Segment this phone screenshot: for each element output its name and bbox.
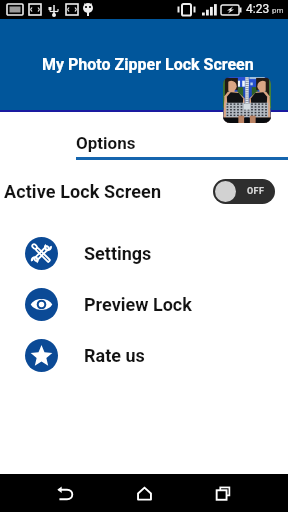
button[interactable]: OFF <box>213 179 275 204</box>
staticText: Settings <box>84 243 152 264</box>
staticText: Rate us <box>84 345 145 366</box>
button[interactable]: Home <box>124 474 164 512</box>
button[interactable]: Back <box>45 474 85 512</box>
staticText: 4:23 <box>246 2 270 16</box>
button[interactable]: Settings <box>0 228 288 279</box>
staticText: Active Lock Screen <box>4 181 162 202</box>
staticText: My Photo Zipper Lock Screen <box>42 55 254 74</box>
staticText: pm <box>270 6 284 15</box>
button[interactable]: Rate us <box>0 330 288 381</box>
button[interactable]: App icon <box>223 77 271 123</box>
button[interactable]: Recent apps <box>203 474 243 512</box>
staticText: Options <box>76 133 136 153</box>
staticText: OFF <box>247 186 265 197</box>
button[interactable]: Preview Lock <box>0 279 288 330</box>
staticText: Preview Lock <box>84 294 192 315</box>
